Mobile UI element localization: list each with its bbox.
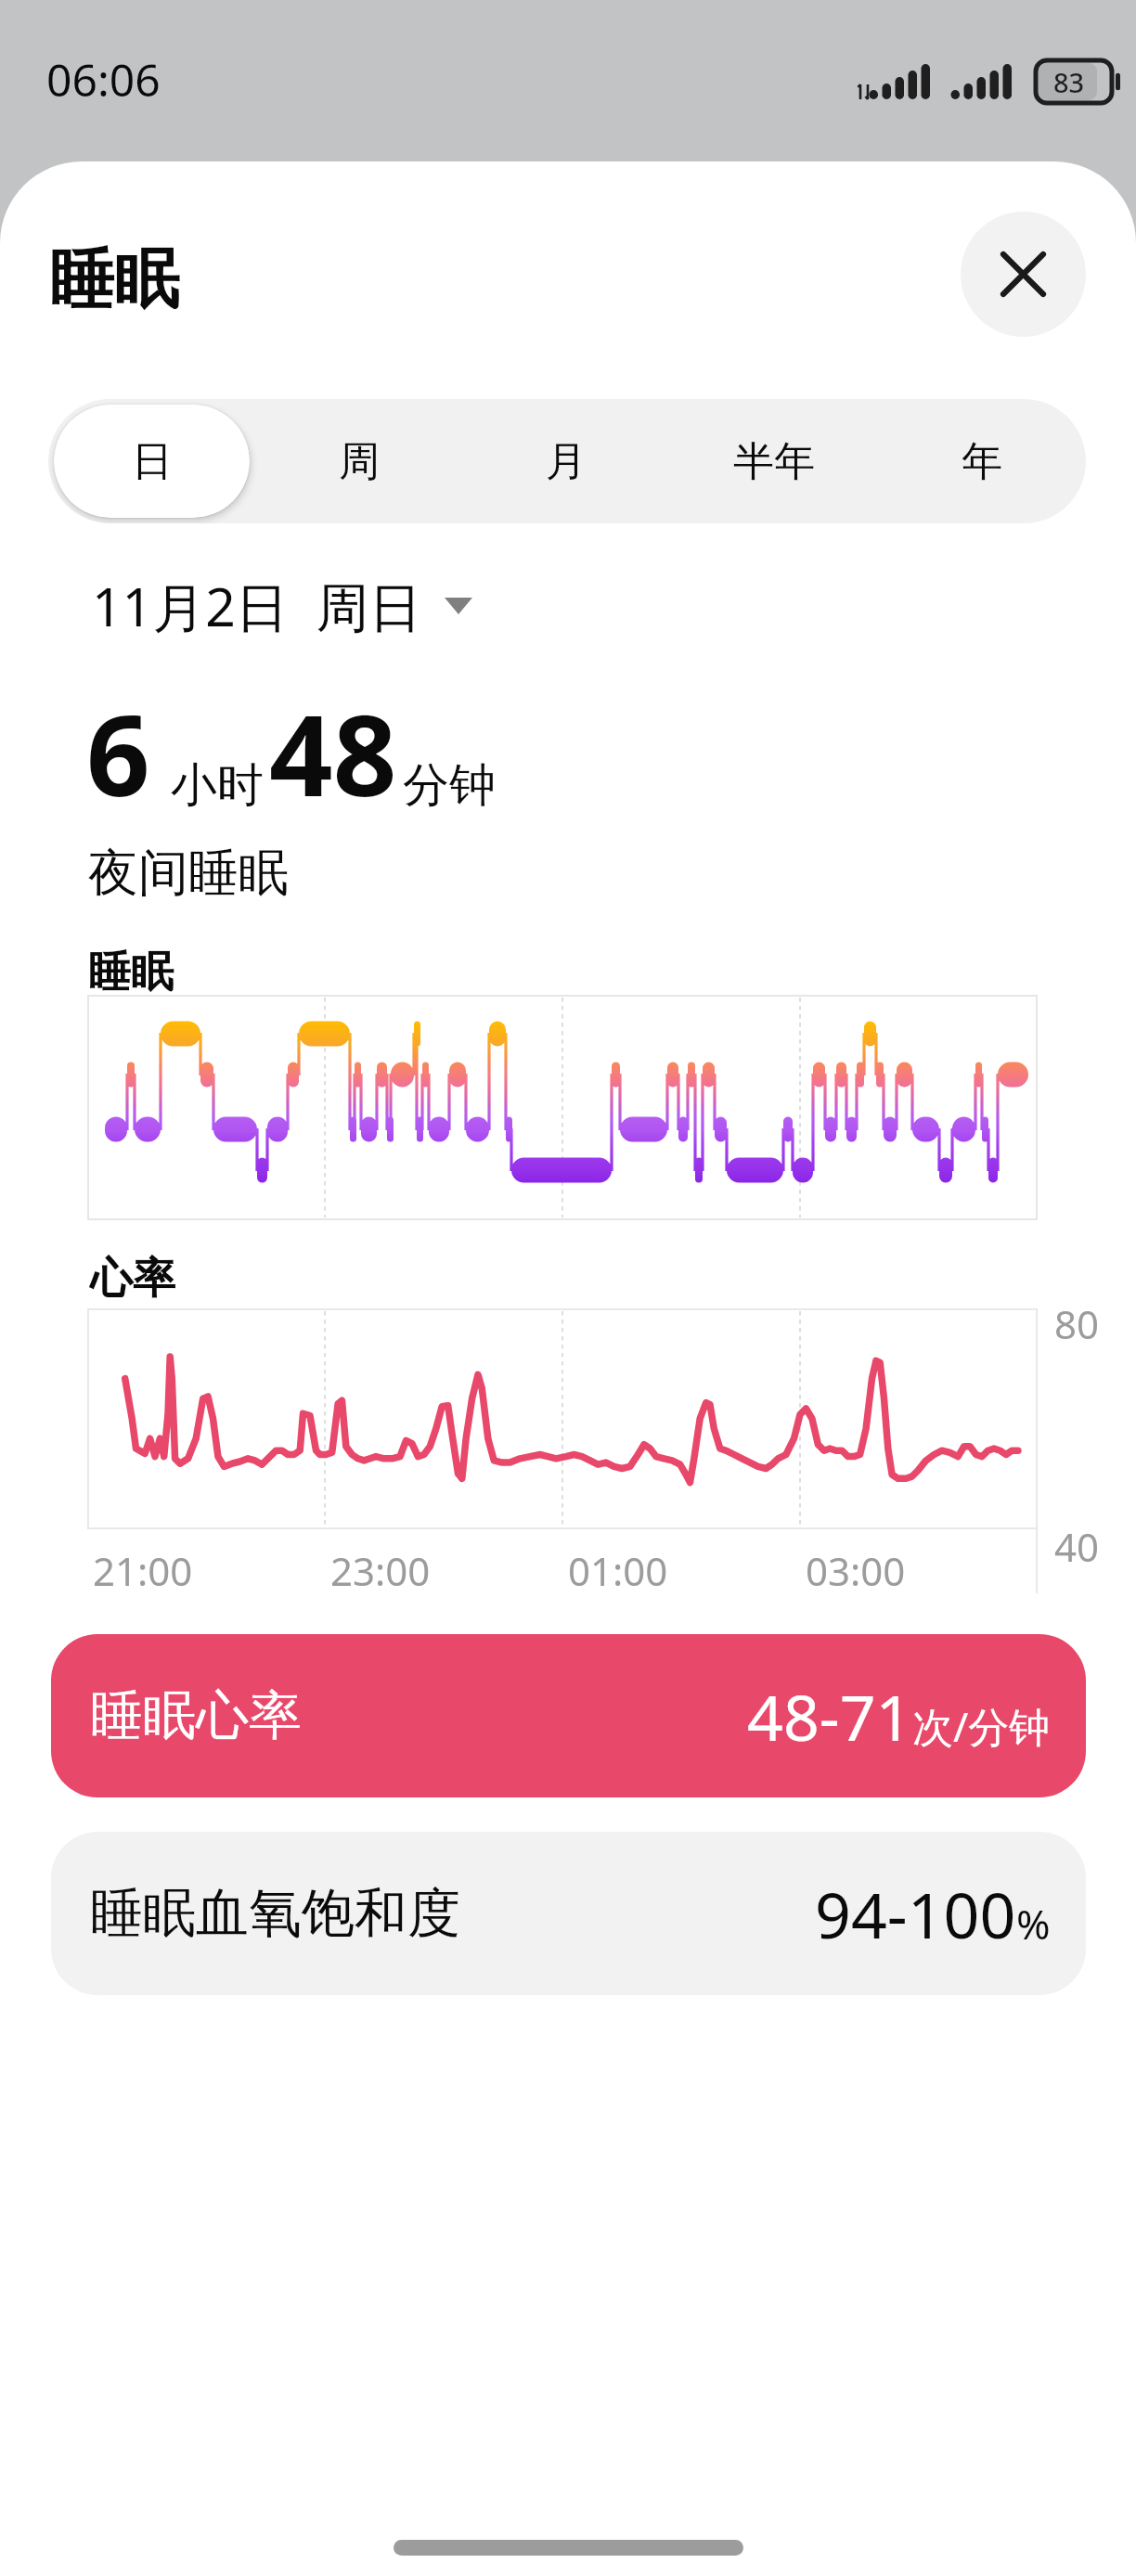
staticText: 小时 bbox=[171, 756, 264, 815]
button[interactable]: 日 bbox=[48, 399, 255, 523]
button[interactable]: 睡眠血氧饱和度 bbox=[51, 1832, 1086, 1995]
staticText: 40 bbox=[1054, 1520, 1100, 1573]
staticText: 23:00 bbox=[330, 1544, 431, 1597]
staticText: 心率 bbox=[90, 1252, 175, 1306]
button[interactable]: 月 bbox=[462, 399, 670, 523]
staticText: 次/分钟 bbox=[912, 1698, 1051, 1754]
staticText: 半年 bbox=[733, 436, 815, 487]
staticText: 80 bbox=[1054, 1297, 1100, 1350]
staticText: 睡眠 bbox=[49, 239, 179, 321]
staticText: 06:06 bbox=[46, 49, 161, 109]
staticText: 83 bbox=[1053, 64, 1085, 100]
staticText: 03:00 bbox=[806, 1544, 906, 1597]
button[interactable]: 半年 bbox=[670, 399, 878, 523]
staticText: 睡眠 bbox=[88, 946, 174, 999]
staticText: 分钟 bbox=[403, 756, 496, 815]
button[interactable]: 周 bbox=[255, 399, 462, 523]
button[interactable]: 11月2日 周日 bbox=[92, 570, 472, 642]
staticText: 睡眠心率 bbox=[90, 1682, 302, 1749]
staticText: 11月2日 周日 bbox=[92, 570, 422, 642]
staticText: % bbox=[1016, 1896, 1051, 1951]
staticText: 日 bbox=[132, 436, 173, 487]
staticText: 夜间睡眠 bbox=[88, 842, 289, 905]
staticText: 48 bbox=[269, 677, 397, 829]
staticText: 01:00 bbox=[568, 1544, 668, 1597]
button[interactable]: 睡眠心率 bbox=[51, 1634, 1086, 1797]
staticText: 6 bbox=[86, 677, 150, 829]
staticText: 94-100 bbox=[815, 1871, 1016, 1957]
staticText: 21:00 bbox=[93, 1544, 193, 1597]
staticText: 年 bbox=[962, 436, 1002, 487]
button[interactable]: 年 bbox=[878, 399, 1086, 523]
button[interactable]: Close bbox=[961, 212, 1086, 337]
staticText: 48-71 bbox=[747, 1673, 912, 1759]
staticText: 睡眠血氧饱和度 bbox=[90, 1880, 460, 1947]
staticText: 周 bbox=[339, 436, 380, 487]
staticText: 月 bbox=[546, 436, 587, 487]
